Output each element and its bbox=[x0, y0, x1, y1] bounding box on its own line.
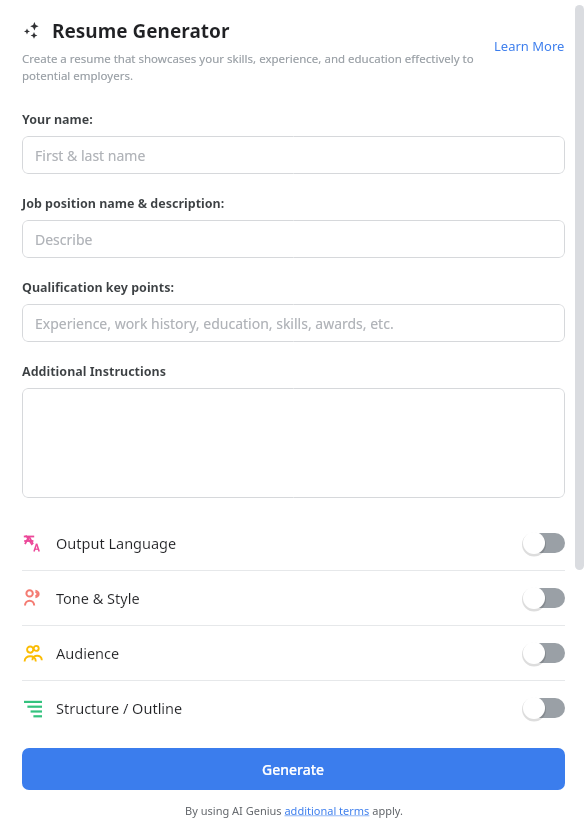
staticText: Qualification key points: bbox=[22, 279, 174, 296]
button[interactable]: Learn More bbox=[494, 37, 565, 55]
button[interactable]: Tone & Style bbox=[0, 571, 587, 625]
button[interactable]: Generate bbox=[22, 748, 565, 790]
staticText: Job position name & description: bbox=[22, 195, 225, 212]
button[interactable]: Experience, work history, education, ski… bbox=[22, 304, 565, 342]
staticText: Resume Generator bbox=[52, 18, 230, 44]
staticText: Describe bbox=[35, 230, 93, 249]
staticText: Experience, work history, education, ski… bbox=[35, 314, 394, 333]
button[interactable]: Structure / Outline bbox=[0, 681, 587, 735]
button[interactable]: Describe bbox=[22, 220, 565, 258]
button[interactable]: Toggle bbox=[521, 695, 565, 721]
staticText: Generate bbox=[262, 760, 325, 779]
staticText: Learn More bbox=[494, 37, 565, 55]
button[interactable]: Audience bbox=[0, 626, 587, 680]
staticText: By using AI Genius additional terms appl… bbox=[185, 803, 403, 818]
staticText: Structure / Outline bbox=[56, 698, 521, 718]
staticText: Audience bbox=[56, 643, 521, 663]
staticText: Create a resume that showcases your skil… bbox=[22, 51, 486, 83]
staticText: First & last name bbox=[35, 146, 146, 165]
button[interactable] bbox=[22, 388, 565, 498]
staticText: Tone & Style bbox=[56, 588, 521, 608]
button[interactable]: First & last name bbox=[22, 136, 565, 174]
button[interactable]: Toggle bbox=[521, 530, 565, 556]
staticText: Your name: bbox=[22, 111, 93, 128]
button[interactable]: Toggle bbox=[521, 640, 565, 666]
staticText: Output Language bbox=[56, 533, 521, 553]
button[interactable]: Toggle bbox=[521, 585, 565, 611]
button[interactable]: Output Language bbox=[0, 516, 587, 570]
staticText: Additional Instructions bbox=[22, 363, 166, 380]
